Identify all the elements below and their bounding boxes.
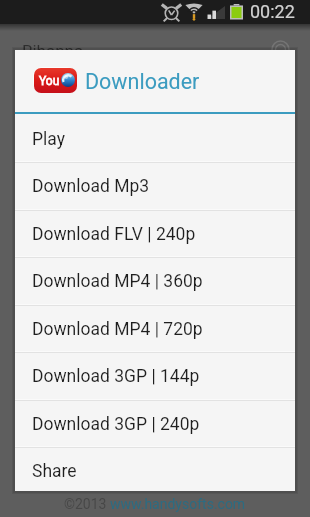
staticText: Play	[32, 129, 65, 150]
button[interactable]: You	[15, 50, 295, 113]
staticText: Download MP4 | 720p	[32, 319, 203, 340]
button[interactable]: Download MP4 | 360p	[15, 257, 295, 305]
button[interactable]: Download 3GP | 240p	[15, 400, 295, 448]
button[interactable]: Download Mp3	[15, 162, 295, 210]
other: Wi-Fi	[185, 3, 203, 22]
button[interactable]: Download FLV | 240p	[15, 210, 295, 258]
button[interactable]: Download MP4 | 720p	[15, 305, 295, 353]
button[interactable]: www.handysofts.com	[110, 496, 246, 512]
staticText: 00:22	[250, 1, 295, 22]
staticText: Download 3GP | 240p	[32, 414, 200, 435]
staticText: Download Mp3	[32, 176, 150, 197]
staticText: Share	[32, 461, 77, 482]
other: Alarm	[162, 3, 181, 22]
button[interactable]: Download 3GP | 144p	[15, 352, 295, 400]
button[interactable]: Play	[15, 115, 295, 163]
staticText: You	[39, 74, 60, 88]
staticText: Download MP4 | 360p	[32, 271, 203, 292]
button[interactable]: Share	[15, 447, 295, 495]
staticText: Rihanna	[22, 41, 84, 61]
staticText: Download 3GP | 144p	[32, 366, 200, 387]
staticText: Downloader	[85, 69, 200, 94]
staticText: ©2013	[64, 496, 110, 512]
staticText: Download FLV | 240p	[32, 224, 196, 245]
